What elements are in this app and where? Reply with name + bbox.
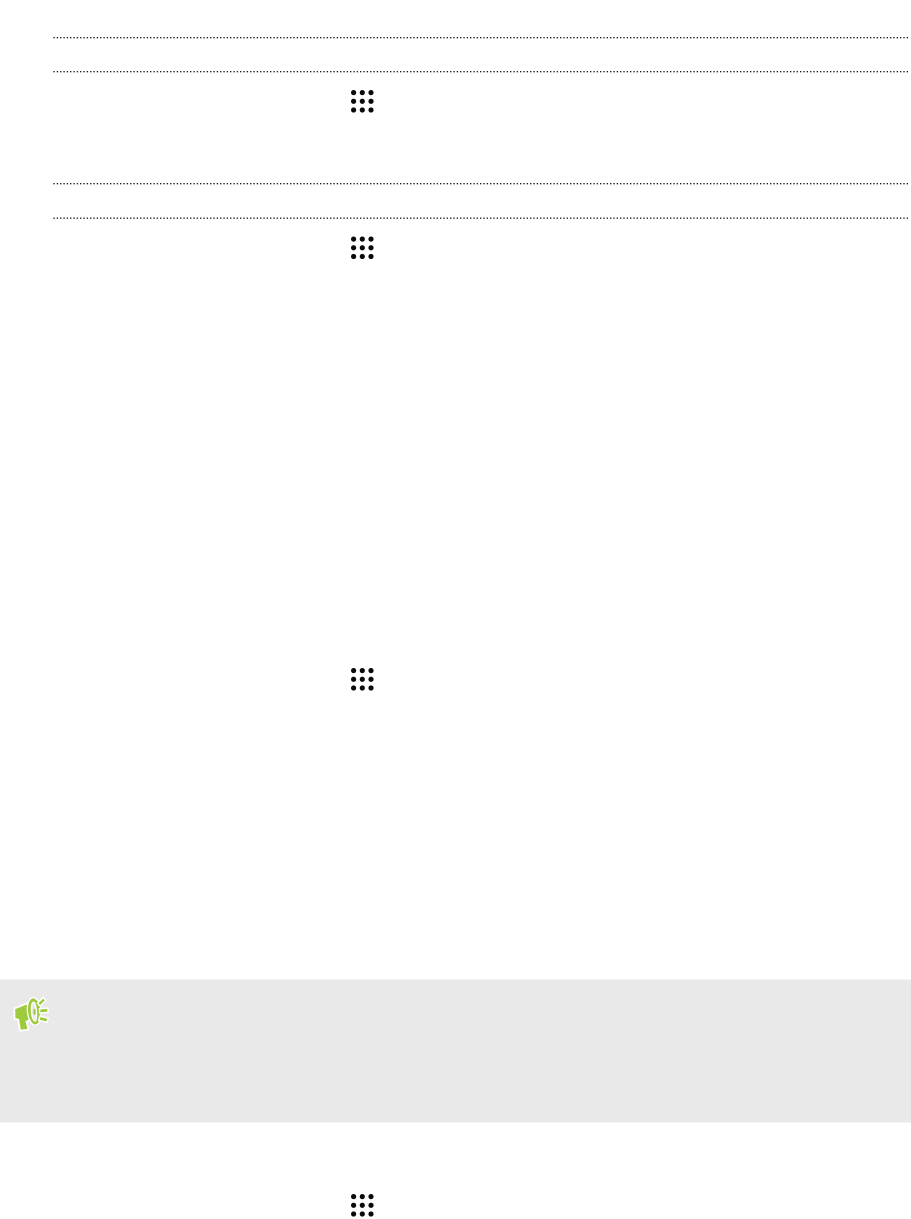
button[interactable]: Apps bbox=[351, 90, 374, 113]
button[interactable]: Apps bbox=[351, 668, 374, 691]
button[interactable]: Apps bbox=[351, 1194, 374, 1217]
button[interactable]: Apps bbox=[351, 236, 374, 259]
